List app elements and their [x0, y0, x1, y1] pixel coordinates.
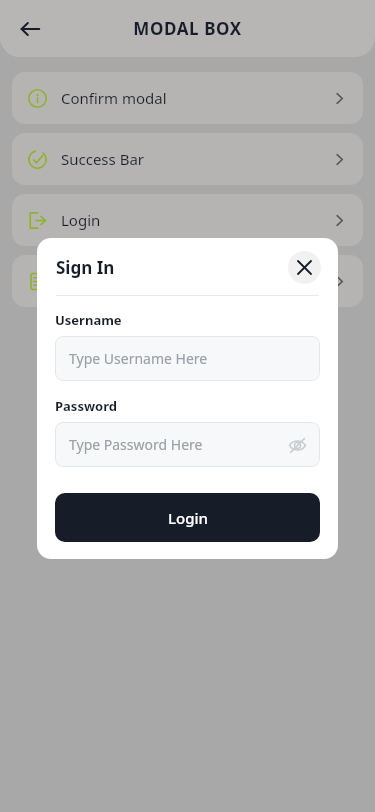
staticText: Success Bar: [61, 149, 144, 169]
button[interactable]: Confirm modal: [12, 72, 363, 124]
staticText: Type Username Here: [69, 349, 208, 368]
staticText: Type Password Here: [69, 435, 203, 454]
button[interactable]: Type Username Here: [55, 336, 320, 381]
staticText: Login: [168, 508, 208, 528]
staticText: Username: [55, 311, 122, 329]
staticText: Sign In: [56, 256, 115, 279]
staticText: Form: [61, 271, 99, 291]
button[interactable]: Type Password Here: [55, 422, 320, 467]
staticText: MODAL BOX: [0, 17, 375, 40]
staticText: Password: [55, 397, 117, 415]
button[interactable]: Login: [12, 194, 363, 246]
button[interactable]: Close: [288, 251, 321, 284]
button[interactable]: Back: [10, 9, 50, 49]
button[interactable]: Login: [55, 493, 320, 542]
button[interactable]: Show password: [286, 434, 308, 456]
button[interactable]: Form: [12, 255, 363, 307]
staticText: Confirm modal: [61, 88, 167, 108]
button[interactable]: Success Bar: [12, 133, 363, 185]
staticText: Login: [61, 210, 101, 230]
